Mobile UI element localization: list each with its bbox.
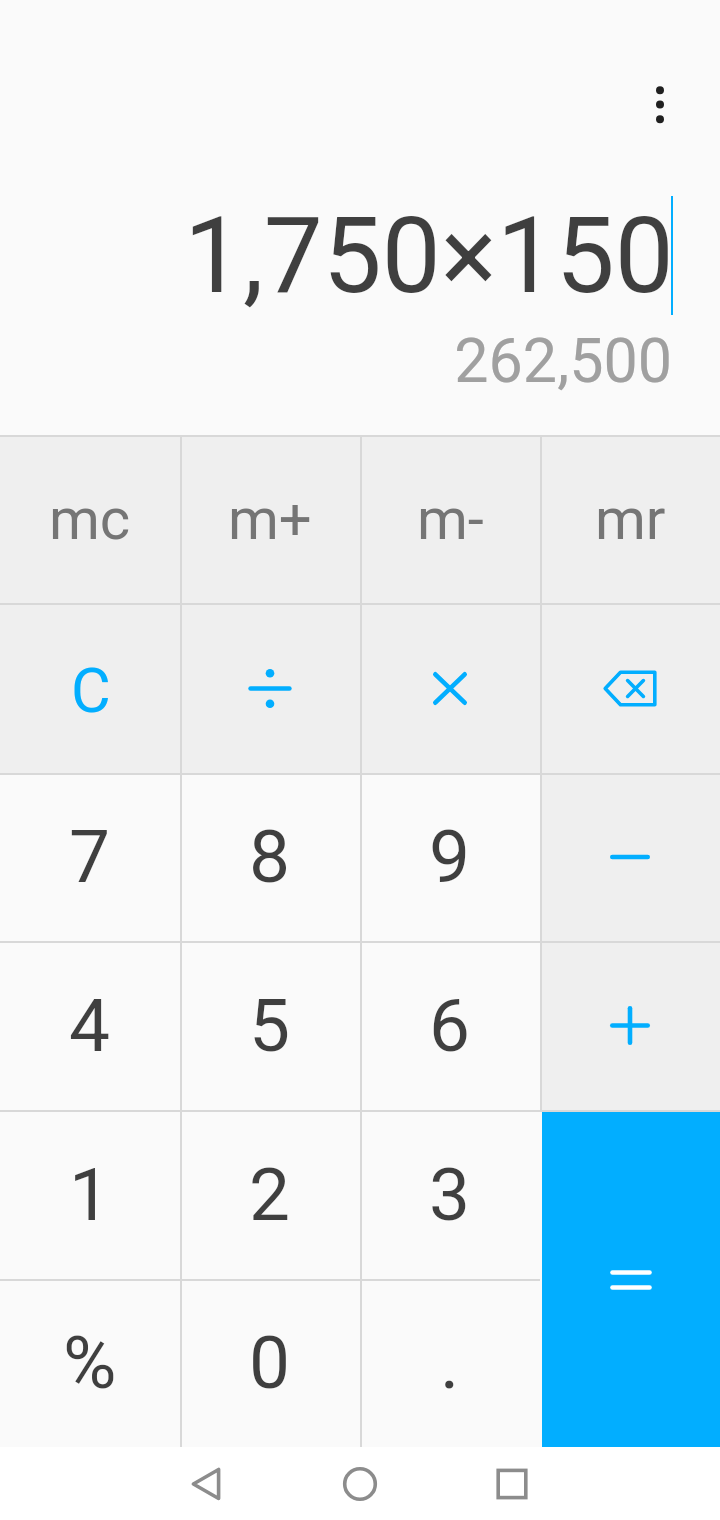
button[interactable]: mc xyxy=(0,435,180,603)
staticText: 1,750×150 xyxy=(184,195,674,318)
staticText: 9 xyxy=(429,814,471,900)
button[interactable]: 5 xyxy=(180,941,360,1110)
button[interactable]: 6 xyxy=(360,941,540,1110)
button[interactable]: Plus xyxy=(540,941,720,1110)
staticText: 1 xyxy=(69,1152,111,1238)
staticText: 8 xyxy=(249,814,291,900)
button[interactable]: Minus xyxy=(540,773,720,941)
staticText: C xyxy=(71,655,111,726)
button[interactable]: 3 xyxy=(360,1110,540,1279)
button[interactable]: 1 xyxy=(0,1110,180,1279)
button[interactable]: Back xyxy=(170,1456,242,1512)
staticText: 262,500 xyxy=(0,325,672,396)
staticText: 0 xyxy=(249,1320,291,1406)
button[interactable]: C xyxy=(0,603,180,773)
button[interactable]: 4 xyxy=(0,941,180,1110)
button[interactable]: 2 xyxy=(180,1110,360,1279)
staticText: % xyxy=(63,1320,117,1406)
button[interactable]: 9 xyxy=(360,773,540,941)
staticText: mr xyxy=(595,485,666,553)
staticText: m- xyxy=(417,485,484,553)
button[interactable]: 8 xyxy=(180,773,360,941)
button[interactable]: Home xyxy=(324,1456,396,1512)
staticText: . xyxy=(440,1320,460,1406)
staticText: m+ xyxy=(228,485,312,553)
button[interactable]: 7 xyxy=(0,773,180,941)
button[interactable]: m- xyxy=(360,435,540,603)
button[interactable]: More options xyxy=(624,54,696,126)
staticText: 7 xyxy=(69,814,111,900)
button[interactable]: Divide xyxy=(180,603,360,773)
staticText: 2 xyxy=(249,1152,291,1238)
staticText: mc xyxy=(49,485,131,553)
button[interactable]: 0 xyxy=(180,1279,360,1447)
button[interactable]: Multiply xyxy=(360,603,540,773)
button[interactable]: Recents xyxy=(476,1456,548,1512)
button[interactable]: Backspace xyxy=(540,603,720,773)
staticText: 5 xyxy=(249,983,291,1069)
button[interactable]: m+ xyxy=(180,435,360,603)
button[interactable]: . xyxy=(360,1279,540,1447)
staticText: 4 xyxy=(69,983,111,1069)
staticText: 3 xyxy=(429,1152,471,1238)
button[interactable]: % xyxy=(0,1279,180,1447)
staticText: 6 xyxy=(429,983,471,1069)
button[interactable]: Equals xyxy=(542,1110,720,1447)
button[interactable]: mr xyxy=(540,435,720,603)
